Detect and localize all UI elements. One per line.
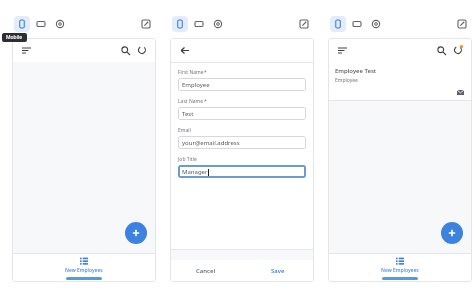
- button[interactable]: Mobile: [172, 16, 188, 32]
- staticText: New Employees: [381, 267, 419, 274]
- button[interactable]: Open externally: [454, 16, 470, 32]
- staticText: Save: [271, 267, 285, 275]
- button[interactable]: New Employees: [12, 253, 156, 282]
- button[interactable]: Manager: [178, 165, 306, 178]
- button[interactable]: Sort: [19, 43, 33, 57]
- button[interactable]: Settings: [210, 16, 226, 32]
- button[interactable]: Tablet: [349, 16, 365, 32]
- button[interactable]: Employee Test: [328, 62, 472, 100]
- staticText: Employee: [182, 81, 210, 89]
- button[interactable]: Refresh: [451, 43, 465, 57]
- staticText: Job Title: [178, 156, 197, 163]
- staticText: Email: [178, 127, 191, 134]
- button[interactable]: Mobile: [14, 16, 30, 32]
- staticText: Manager: [182, 168, 208, 176]
- button[interactable]: New Employees: [328, 253, 472, 282]
- button[interactable]: Cancel: [170, 267, 242, 275]
- staticText: Cancel: [196, 267, 216, 275]
- button[interactable]: Search: [118, 43, 132, 57]
- button[interactable]: Tablet: [191, 16, 207, 32]
- button[interactable]: Sort: [335, 43, 349, 57]
- staticText: First Name: [178, 69, 204, 76]
- button[interactable]: Open externally: [138, 16, 154, 32]
- button[interactable]: Back: [177, 43, 191, 57]
- staticText: *: [204, 69, 207, 76]
- button[interactable]: Open externally: [296, 16, 312, 32]
- staticText: New Employees: [65, 267, 103, 274]
- button[interactable]: Mobile: [330, 16, 346, 32]
- staticText: Mobile: [6, 34, 23, 41]
- button[interactable]: Settings: [368, 16, 384, 32]
- button[interactable]: Employee: [178, 78, 306, 91]
- button[interactable]: Add employee: [125, 222, 147, 244]
- button[interactable]: Save: [242, 267, 314, 275]
- button[interactable]: Test: [178, 107, 306, 120]
- button[interactable]: Settings: [52, 16, 68, 32]
- button[interactable]: Email: [455, 87, 465, 97]
- staticText: Last Name: [178, 98, 204, 105]
- button[interactable]: Tablet: [33, 16, 49, 32]
- button[interactable]: Refresh: [135, 43, 149, 57]
- staticText: your@email.address: [182, 139, 240, 147]
- staticText: *: [204, 98, 207, 105]
- button[interactable]: Add employee: [441, 222, 463, 244]
- button[interactable]: your@email.address: [178, 136, 306, 149]
- button[interactable]: Search: [434, 43, 448, 57]
- staticText: Test: [182, 110, 194, 118]
- staticText: Employee Test: [335, 67, 377, 75]
- staticText: Employee: [335, 77, 358, 84]
